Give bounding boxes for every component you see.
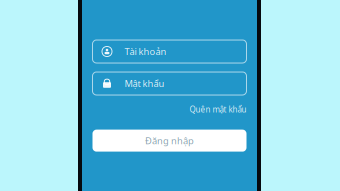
button[interactable]: Đăng nhập <box>92 130 246 152</box>
button[interactable]: Tài khoản <box>92 40 246 63</box>
button[interactable]: Mật khẩu <box>92 72 246 95</box>
staticText: Mật khẩu <box>124 77 164 90</box>
staticText: Đăng nhập <box>145 134 194 147</box>
staticText: Tài khoản <box>124 45 166 58</box>
staticText: Quên mật khẩu <box>189 104 246 115</box>
button[interactable]: Quên mật khẩu <box>189 104 246 115</box>
